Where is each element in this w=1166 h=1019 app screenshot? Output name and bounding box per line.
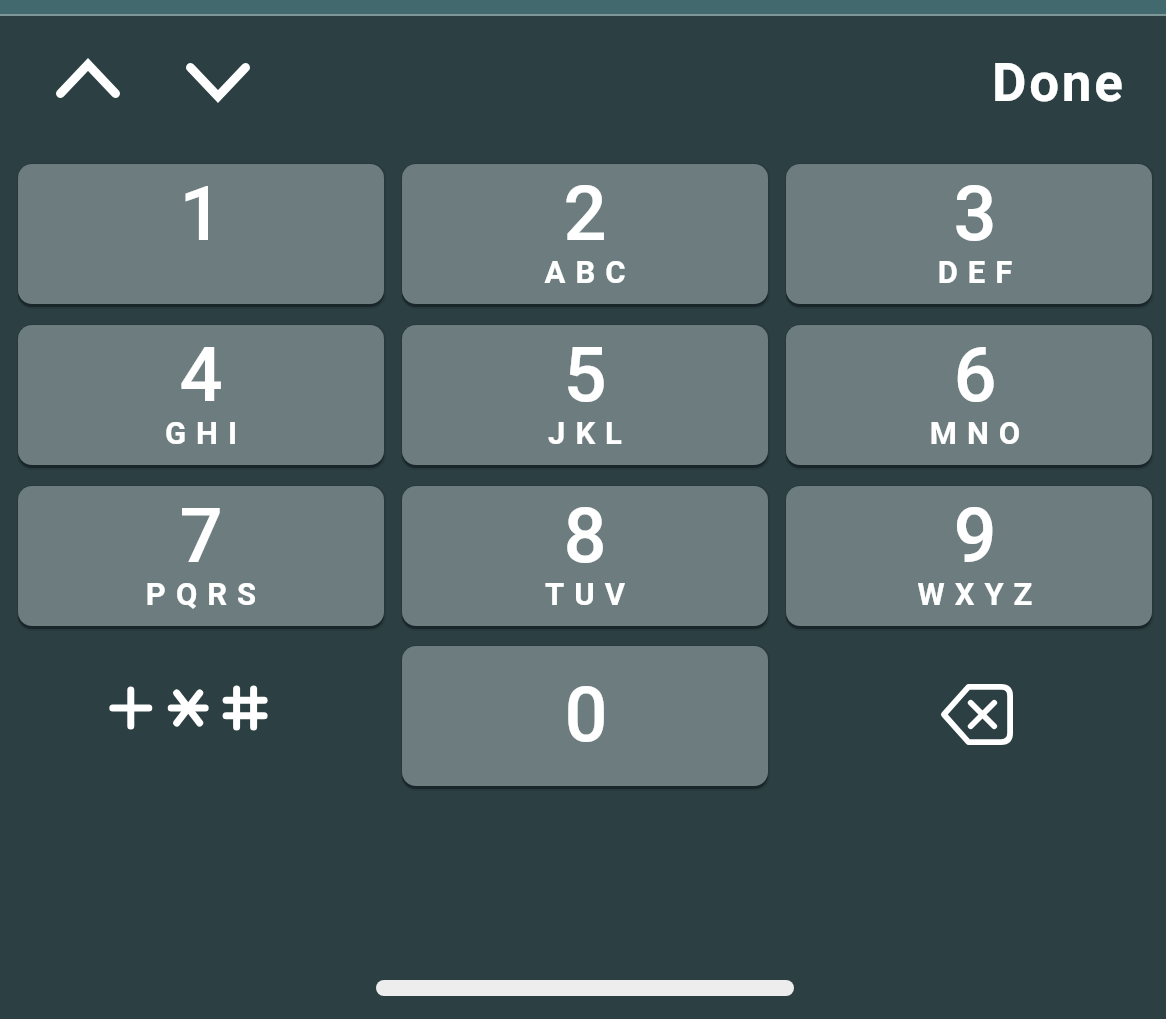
button[interactable]: 8 xyxy=(402,486,768,626)
button[interactable]: 5 xyxy=(402,325,768,465)
button[interactable]: Previous field xyxy=(28,43,148,115)
staticText: WXYZ xyxy=(797,576,1152,612)
button[interactable]: Next field xyxy=(158,46,278,118)
button[interactable]: 3 xyxy=(786,164,1152,304)
staticText: PQRS xyxy=(23,576,384,612)
button[interactable]: 7 xyxy=(18,486,384,626)
staticText: ABC xyxy=(407,254,768,290)
staticText: GHI xyxy=(23,415,384,451)
staticText: 1 xyxy=(18,169,384,258)
staticText: 8 xyxy=(402,491,768,580)
staticText: MNO xyxy=(797,415,1152,451)
staticText: 5 xyxy=(402,330,768,419)
button[interactable]: Backspace xyxy=(786,646,1152,786)
button[interactable]: 1 xyxy=(18,164,384,304)
button[interactable]: 9 xyxy=(786,486,1152,626)
button[interactable]: Plus star pound symbols xyxy=(18,646,384,786)
button[interactable]: 6 xyxy=(786,325,1152,465)
staticText: DEF xyxy=(797,254,1152,290)
button[interactable]: 0 xyxy=(402,646,768,786)
staticText: JKL xyxy=(407,415,768,451)
staticText: 4 xyxy=(18,330,384,419)
staticText: 0 xyxy=(403,670,768,759)
button[interactable]: 4 xyxy=(18,325,384,465)
staticText: TUV xyxy=(407,576,768,612)
staticText: Done xyxy=(992,52,1126,114)
button[interactable]: 2 xyxy=(402,164,768,304)
button[interactable]: Done xyxy=(959,28,1159,138)
staticText: 7 xyxy=(18,491,384,580)
staticText: 9 xyxy=(792,491,1152,580)
staticText: 6 xyxy=(792,330,1152,419)
staticText: 3 xyxy=(792,169,1152,258)
staticText: 2 xyxy=(402,169,768,258)
